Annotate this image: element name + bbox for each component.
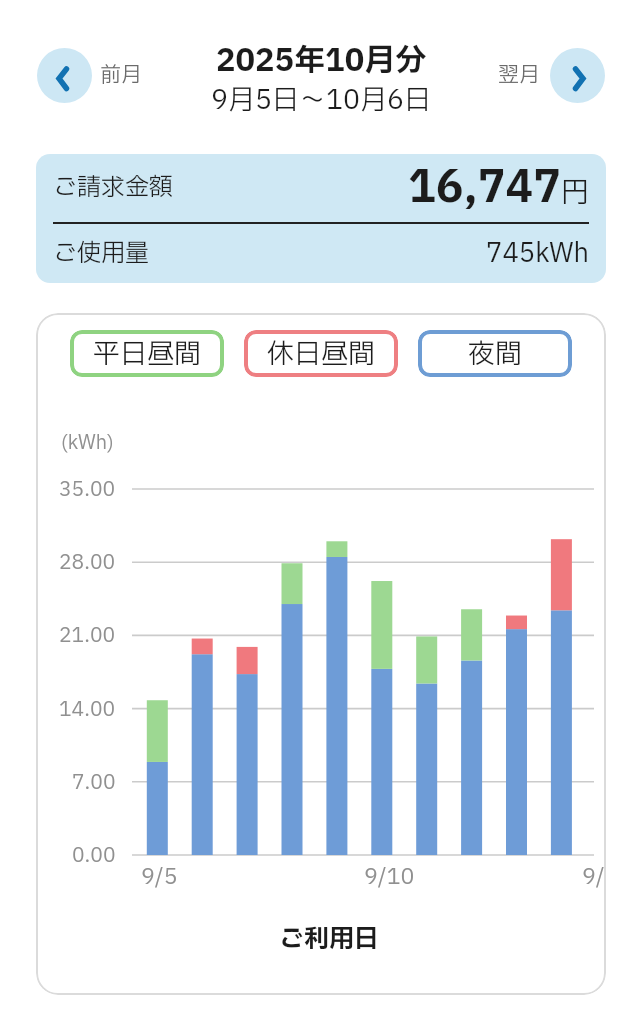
button[interactable]: 休日昼間 (244, 330, 398, 377)
staticText: ご使用量 (53, 236, 149, 272)
staticText: 9/10 (364, 861, 415, 889)
staticText: ご利用日 (279, 921, 380, 958)
button[interactable] (37, 48, 92, 103)
staticText: 2025年10月分 (216, 38, 427, 80)
staticText: 745kWh (486, 234, 589, 273)
staticText: 28.00 (59, 548, 116, 576)
staticText: 14.00 (59, 695, 116, 723)
button[interactable]: 夜間 (418, 330, 572, 377)
staticText: 35.00 (59, 475, 116, 503)
staticText: (kWh) (61, 429, 114, 457)
button[interactable]: 平日昼間 (70, 330, 224, 377)
staticText: 夜間 (468, 334, 522, 374)
staticText: ご請求金額 (53, 170, 173, 206)
staticText: 翌月 (498, 60, 540, 91)
staticText: 前月 (100, 60, 142, 91)
button[interactable] (550, 48, 605, 103)
staticText: 9/5 (141, 861, 178, 889)
staticText: 9/15 (582, 861, 606, 889)
staticText: 平日昼間 (93, 334, 201, 374)
staticText: 9月5日〜10月6日 (211, 80, 432, 118)
staticText: 休日昼間 (267, 334, 375, 374)
staticText: 7.00 (72, 768, 116, 796)
staticText: 21.00 (59, 621, 116, 649)
staticText: 0.00 (72, 841, 116, 869)
staticText: 16,747円 (408, 155, 589, 221)
